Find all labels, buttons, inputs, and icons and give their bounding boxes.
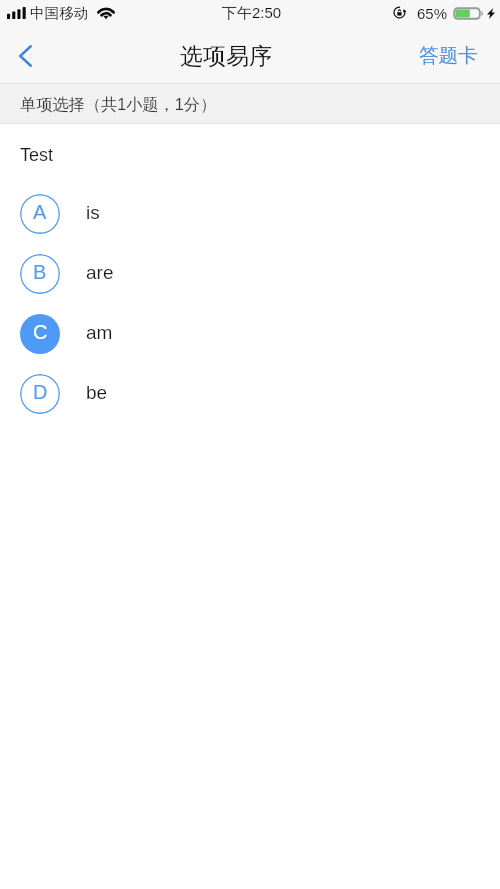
button[interactable]: Back xyxy=(0,28,52,83)
staticText: 选项易序 xyxy=(180,42,272,71)
staticText: B xyxy=(33,261,47,283)
staticText: am xyxy=(86,322,113,343)
staticText: Test xyxy=(20,145,54,165)
staticText: A xyxy=(33,201,47,223)
staticText: 单项选择（共1小题，1分） xyxy=(20,94,217,114)
staticText: 答题卡 xyxy=(419,43,478,68)
button[interactable]: 答题卡 xyxy=(397,28,500,83)
staticText: 65% xyxy=(417,5,448,22)
staticText: be xyxy=(86,382,108,403)
staticText: 下午2:50 xyxy=(222,4,282,23)
staticText: are xyxy=(86,262,114,283)
button[interactable]: A xyxy=(0,184,500,244)
button[interactable]: D xyxy=(0,364,500,424)
button[interactable]: B xyxy=(0,244,500,304)
staticText: is xyxy=(86,202,100,223)
staticText: D xyxy=(33,381,48,403)
staticText: C xyxy=(33,321,48,343)
staticText: 中国移动 xyxy=(30,4,89,22)
button[interactable]: C xyxy=(0,304,500,364)
